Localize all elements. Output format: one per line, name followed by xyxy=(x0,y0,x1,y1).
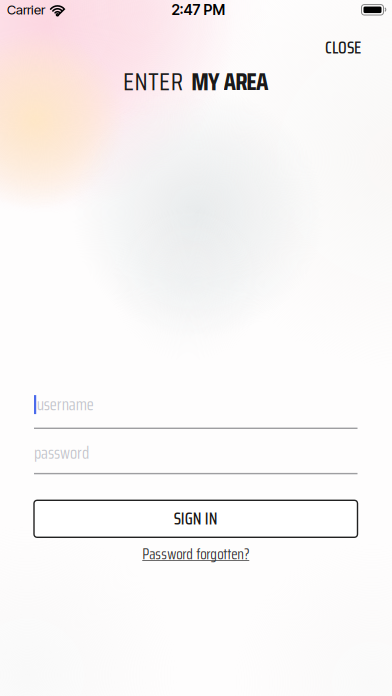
staticText: ENTER xyxy=(123,62,183,101)
button[interactable]: SIGN IN xyxy=(34,500,357,537)
staticText: SIGN IN xyxy=(174,506,218,532)
staticText: 2:47 PM xyxy=(171,1,225,18)
staticText: Carrier xyxy=(7,2,45,18)
button[interactable]: CLOSE xyxy=(325,34,361,61)
staticText: Password forgotten? xyxy=(142,542,249,566)
button[interactable]: Password forgotten? xyxy=(142,542,249,566)
staticText: AREA xyxy=(223,62,269,101)
staticText: username xyxy=(37,392,94,417)
button[interactable]: password xyxy=(34,444,357,474)
staticText: MY xyxy=(191,62,220,101)
staticText: CLOSE xyxy=(325,34,361,61)
button[interactable]: username xyxy=(34,395,357,429)
staticText: password xyxy=(34,440,89,466)
